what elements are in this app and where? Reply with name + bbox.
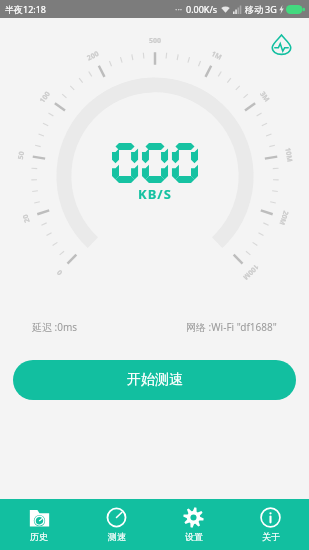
staticText: 延迟 :0ms — [32, 320, 78, 334]
staticText: 0.00K/s — [186, 3, 218, 15]
staticText: 移动 — [245, 4, 263, 15]
staticText: 20 — [20, 212, 33, 224]
staticText: 10M — [282, 147, 295, 163]
staticText: 20M — [276, 209, 290, 227]
staticText: 半夜12:18 — [5, 3, 47, 15]
staticText: 0 — [54, 267, 65, 277]
staticText: 200 — [85, 49, 101, 63]
staticText: 关于 — [262, 531, 280, 542]
staticText: ··· — [175, 3, 183, 15]
button[interactable]: 关于 — [232, 499, 309, 550]
staticText: 100 — [38, 89, 53, 105]
staticText: 网络 :Wi-Fi "df1688" — [186, 320, 277, 334]
staticText: 3M — [257, 90, 272, 104]
staticText: 100M — [240, 262, 261, 282]
staticText: 开始测速 — [127, 371, 183, 389]
button[interactable]: 开始测速 — [13, 360, 296, 400]
staticText: 500 — [149, 36, 162, 46]
staticText: 设置 — [185, 531, 203, 542]
staticText: 50 — [16, 150, 27, 160]
staticText: 历史 — [30, 531, 48, 542]
button[interactable]: Network monitor — [265, 28, 297, 60]
button[interactable]: 设置 — [155, 499, 232, 550]
button[interactable]: 测速 — [78, 499, 155, 550]
staticText: 3G — [265, 3, 277, 15]
staticText: 测速 — [108, 531, 126, 542]
staticText: KB/S — [138, 185, 172, 203]
staticText: 1M — [209, 49, 224, 63]
button[interactable]: 历史 — [0, 499, 78, 550]
